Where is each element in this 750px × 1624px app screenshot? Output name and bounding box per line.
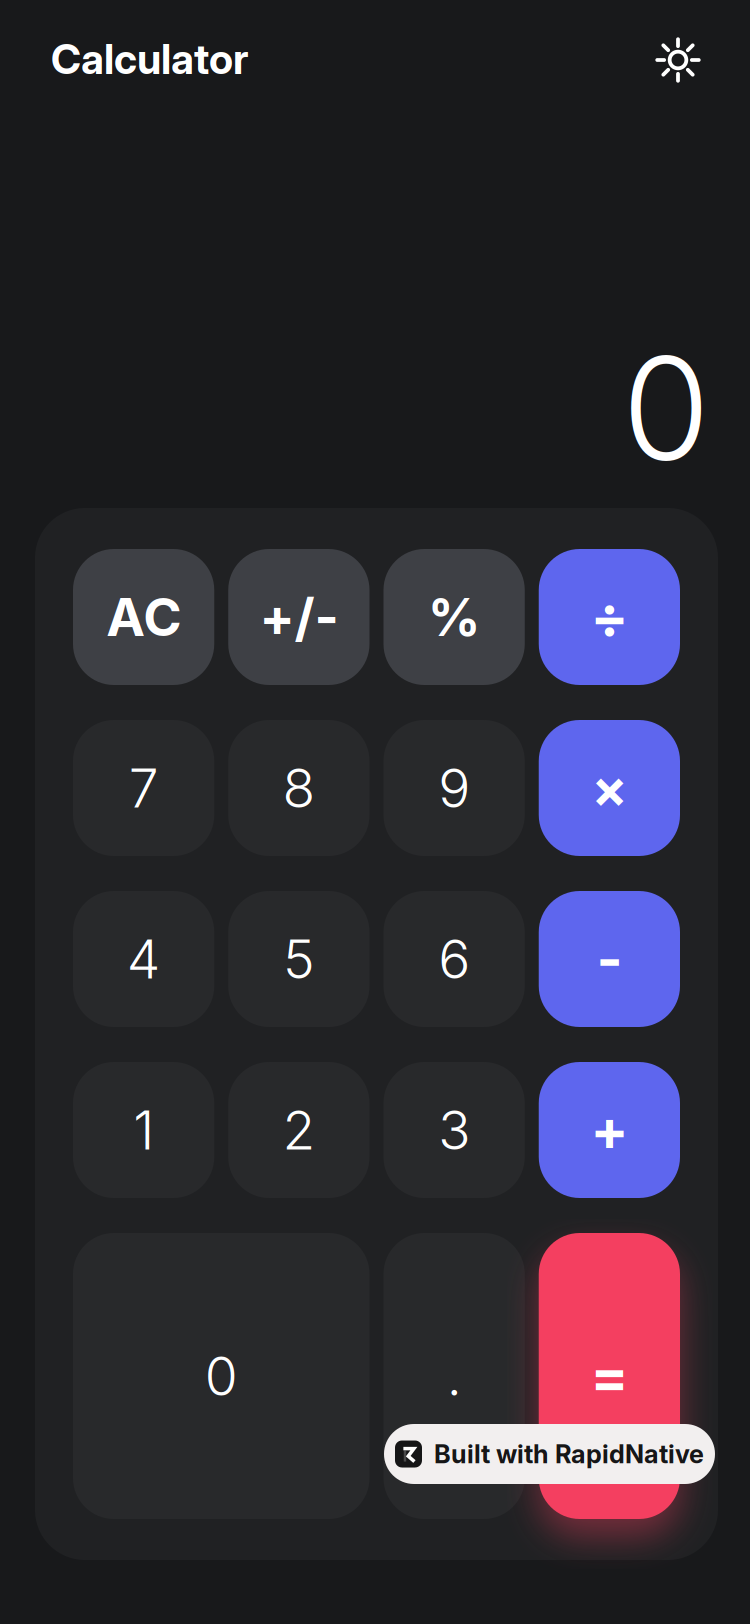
button[interactable]: 3 bbox=[383, 1062, 525, 1198]
staticText: 9 bbox=[438, 756, 470, 820]
staticText: + bbox=[590, 1096, 628, 1164]
button[interactable]: 9 bbox=[383, 720, 525, 856]
button[interactable]: AC bbox=[73, 549, 214, 685]
button[interactable]: 5 bbox=[228, 891, 369, 1027]
button[interactable]: × bbox=[539, 720, 680, 856]
staticText: × bbox=[591, 756, 627, 820]
staticText: +/- bbox=[259, 585, 338, 648]
staticText: - bbox=[596, 925, 622, 993]
staticText: 1 bbox=[133, 1098, 154, 1162]
staticText: 0 bbox=[205, 1344, 238, 1408]
staticText: 3 bbox=[438, 1098, 470, 1162]
staticText: Calculator bbox=[51, 34, 249, 84]
button[interactable]: 4 bbox=[73, 891, 214, 1027]
staticText: 8 bbox=[282, 756, 315, 820]
button[interactable]: = bbox=[539, 1233, 680, 1519]
button[interactable]: . bbox=[383, 1233, 525, 1519]
button[interactable]: 1 bbox=[73, 1062, 214, 1198]
button[interactable]: 2 bbox=[228, 1062, 369, 1198]
staticText: . bbox=[447, 1344, 462, 1408]
staticText: 2 bbox=[282, 1098, 315, 1162]
button[interactable]: 8 bbox=[228, 720, 369, 856]
button[interactable]: +/- bbox=[228, 549, 369, 685]
staticText: 7 bbox=[129, 756, 159, 820]
button[interactable]: + bbox=[539, 1062, 680, 1198]
staticText: = bbox=[590, 1342, 628, 1410]
staticText: AC bbox=[106, 585, 181, 648]
button[interactable]: - bbox=[539, 891, 680, 1027]
button[interactable]: Toggle appearance bbox=[646, 28, 710, 92]
staticText: ÷ bbox=[590, 583, 628, 651]
staticText: Built with RapidNative bbox=[434, 1439, 704, 1469]
button[interactable]: 6 bbox=[383, 891, 525, 1027]
staticText: 0 bbox=[622, 322, 710, 494]
staticText: 4 bbox=[127, 927, 161, 991]
button[interactable]: ÷ bbox=[539, 549, 680, 685]
button[interactable]: 7 bbox=[73, 720, 214, 856]
button[interactable]: 0 bbox=[73, 1233, 369, 1519]
button[interactable]: % bbox=[383, 549, 525, 685]
staticText: 5 bbox=[283, 927, 315, 991]
staticText: % bbox=[428, 585, 481, 648]
staticText: 6 bbox=[438, 927, 470, 991]
